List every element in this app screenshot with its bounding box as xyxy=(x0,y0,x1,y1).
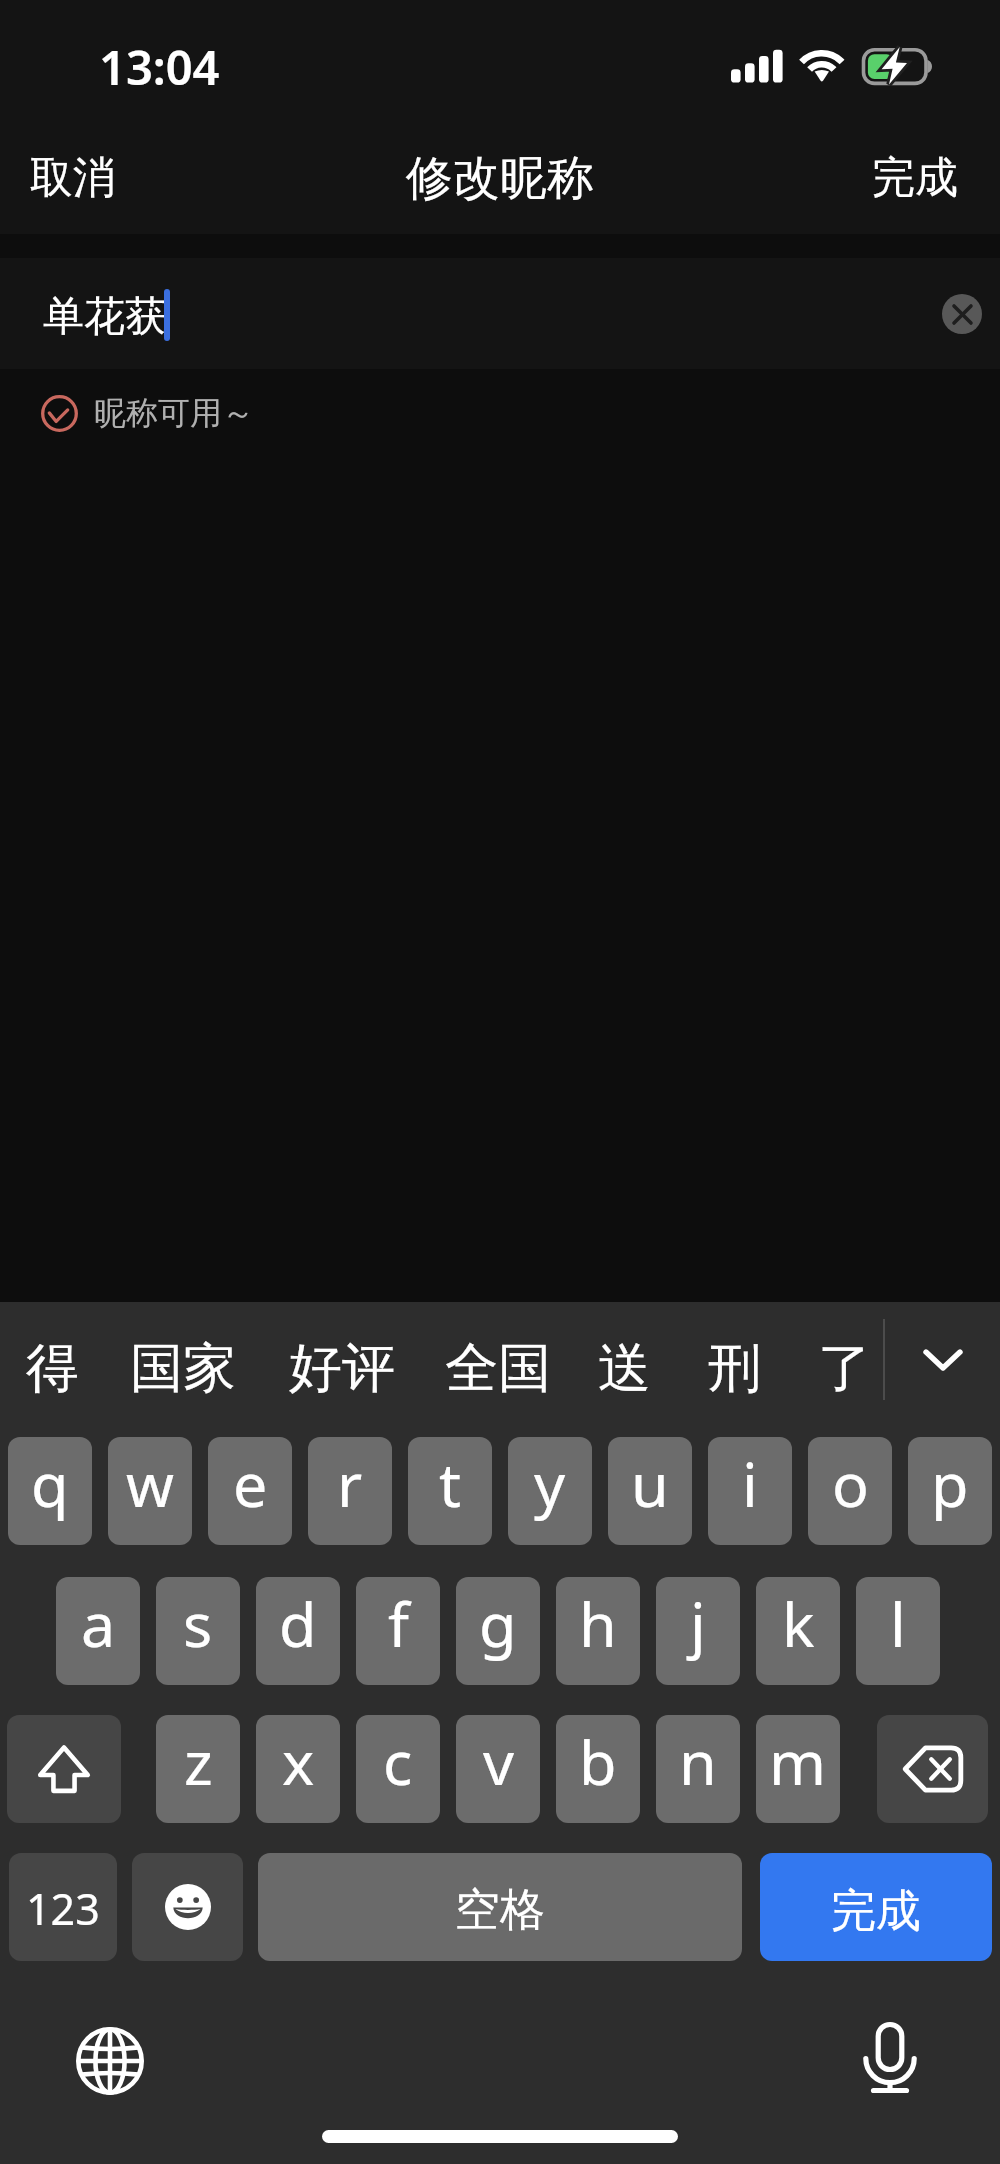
button[interactable]: 空格 xyxy=(258,1853,742,1961)
staticText: l xyxy=(890,1582,906,1665)
button[interactable]: o xyxy=(808,1437,892,1545)
staticText: c xyxy=(383,1720,413,1803)
staticText: u xyxy=(631,1442,669,1525)
staticText: 完成 xyxy=(831,1883,921,1940)
staticText: 取消 xyxy=(30,151,116,205)
button[interactable]: Backspace xyxy=(877,1715,988,1823)
staticText: 空格 xyxy=(455,1882,545,1939)
staticText: m xyxy=(769,1720,827,1803)
button[interactable]: r xyxy=(308,1437,392,1545)
button[interactable]: d xyxy=(256,1577,340,1685)
button[interactable]: i xyxy=(708,1437,792,1545)
button[interactable]: Shift xyxy=(7,1715,121,1823)
button[interactable]: g xyxy=(456,1577,540,1685)
staticText: 完成 xyxy=(872,151,958,205)
button[interactable]: 全国 xyxy=(419,1313,577,1424)
button[interactable]: w xyxy=(108,1437,192,1545)
button[interactable]: 好评 xyxy=(263,1313,421,1424)
staticText: p xyxy=(931,1442,969,1525)
staticText: e xyxy=(233,1442,268,1525)
button[interactable]: e xyxy=(208,1437,292,1545)
staticText: 刑 xyxy=(708,1335,761,1402)
button[interactable]: n xyxy=(656,1715,740,1823)
staticText: 昵称可用～ xyxy=(94,393,254,433)
staticText: 123 xyxy=(26,1879,100,1938)
button[interactable]: a xyxy=(56,1577,140,1685)
staticText: 了 xyxy=(818,1335,871,1402)
staticText: 国家 xyxy=(130,1335,236,1402)
button[interactable]: p xyxy=(908,1437,992,1545)
button[interactable]: 了 xyxy=(792,1313,897,1424)
button[interactable]: t xyxy=(408,1437,492,1545)
button[interactable]: x xyxy=(256,1715,340,1823)
staticText: 好评 xyxy=(289,1335,395,1402)
button[interactable]: Clear text xyxy=(942,294,982,334)
button[interactable]: 完成 xyxy=(842,133,1000,223)
staticText: k xyxy=(782,1582,815,1665)
staticText: b xyxy=(579,1720,617,1803)
staticText: 送 xyxy=(598,1335,651,1402)
staticText: 得 xyxy=(26,1335,79,1402)
button[interactable]: y xyxy=(508,1437,592,1545)
button[interactable]: 送 xyxy=(572,1313,677,1424)
button[interactable]: 刑 xyxy=(682,1313,787,1424)
staticText: t xyxy=(439,1442,462,1525)
button[interactable]: Dictation xyxy=(865,2022,915,2094)
button[interactable]: q xyxy=(8,1437,92,1545)
button[interactable]: z xyxy=(156,1715,240,1823)
staticText: j xyxy=(690,1582,706,1665)
button[interactable]: v xyxy=(456,1715,540,1823)
staticText: s xyxy=(183,1582,213,1665)
button[interactable]: b xyxy=(556,1715,640,1823)
staticText: a xyxy=(81,1582,116,1665)
button[interactable]: k xyxy=(756,1577,840,1685)
staticText: 单花获 xyxy=(43,291,166,343)
staticText: 修改昵称 xyxy=(406,149,594,208)
button[interactable]: 得 xyxy=(0,1313,105,1424)
staticText: z xyxy=(184,1720,213,1803)
staticText: d xyxy=(279,1582,317,1665)
button[interactable]: 完成 xyxy=(760,1853,992,1961)
button[interactable]: 国家 xyxy=(104,1313,262,1424)
button[interactable]: 123 xyxy=(9,1853,117,1961)
staticText: r xyxy=(337,1442,363,1525)
staticText: 全国 xyxy=(445,1335,551,1402)
staticText: w xyxy=(126,1442,174,1525)
button[interactable]: h xyxy=(556,1577,640,1685)
staticText: g xyxy=(479,1582,517,1665)
button[interactable]: Next keyboard xyxy=(76,2027,144,2095)
staticText: o xyxy=(832,1442,869,1525)
staticText: n xyxy=(679,1720,717,1803)
button[interactable]: m xyxy=(756,1715,840,1823)
staticText: x xyxy=(282,1720,315,1803)
staticText: i xyxy=(742,1442,758,1525)
button[interactable]: f xyxy=(356,1577,440,1685)
button[interactable]: u xyxy=(608,1437,692,1545)
button[interactable]: Emoji xyxy=(132,1853,243,1961)
staticText: q xyxy=(31,1442,69,1525)
staticText: 13:04 xyxy=(99,35,220,99)
staticText: f xyxy=(388,1582,409,1665)
staticText: h xyxy=(579,1582,617,1665)
button[interactable]: Hide keyboard xyxy=(895,1302,990,1417)
staticText: v xyxy=(483,1720,514,1803)
button[interactable]: l xyxy=(856,1577,940,1685)
button[interactable]: s xyxy=(156,1577,240,1685)
button[interactable]: j xyxy=(656,1577,740,1685)
button[interactable]: c xyxy=(356,1715,440,1823)
button[interactable]: 取消 xyxy=(0,133,146,223)
staticText: y xyxy=(534,1442,566,1525)
